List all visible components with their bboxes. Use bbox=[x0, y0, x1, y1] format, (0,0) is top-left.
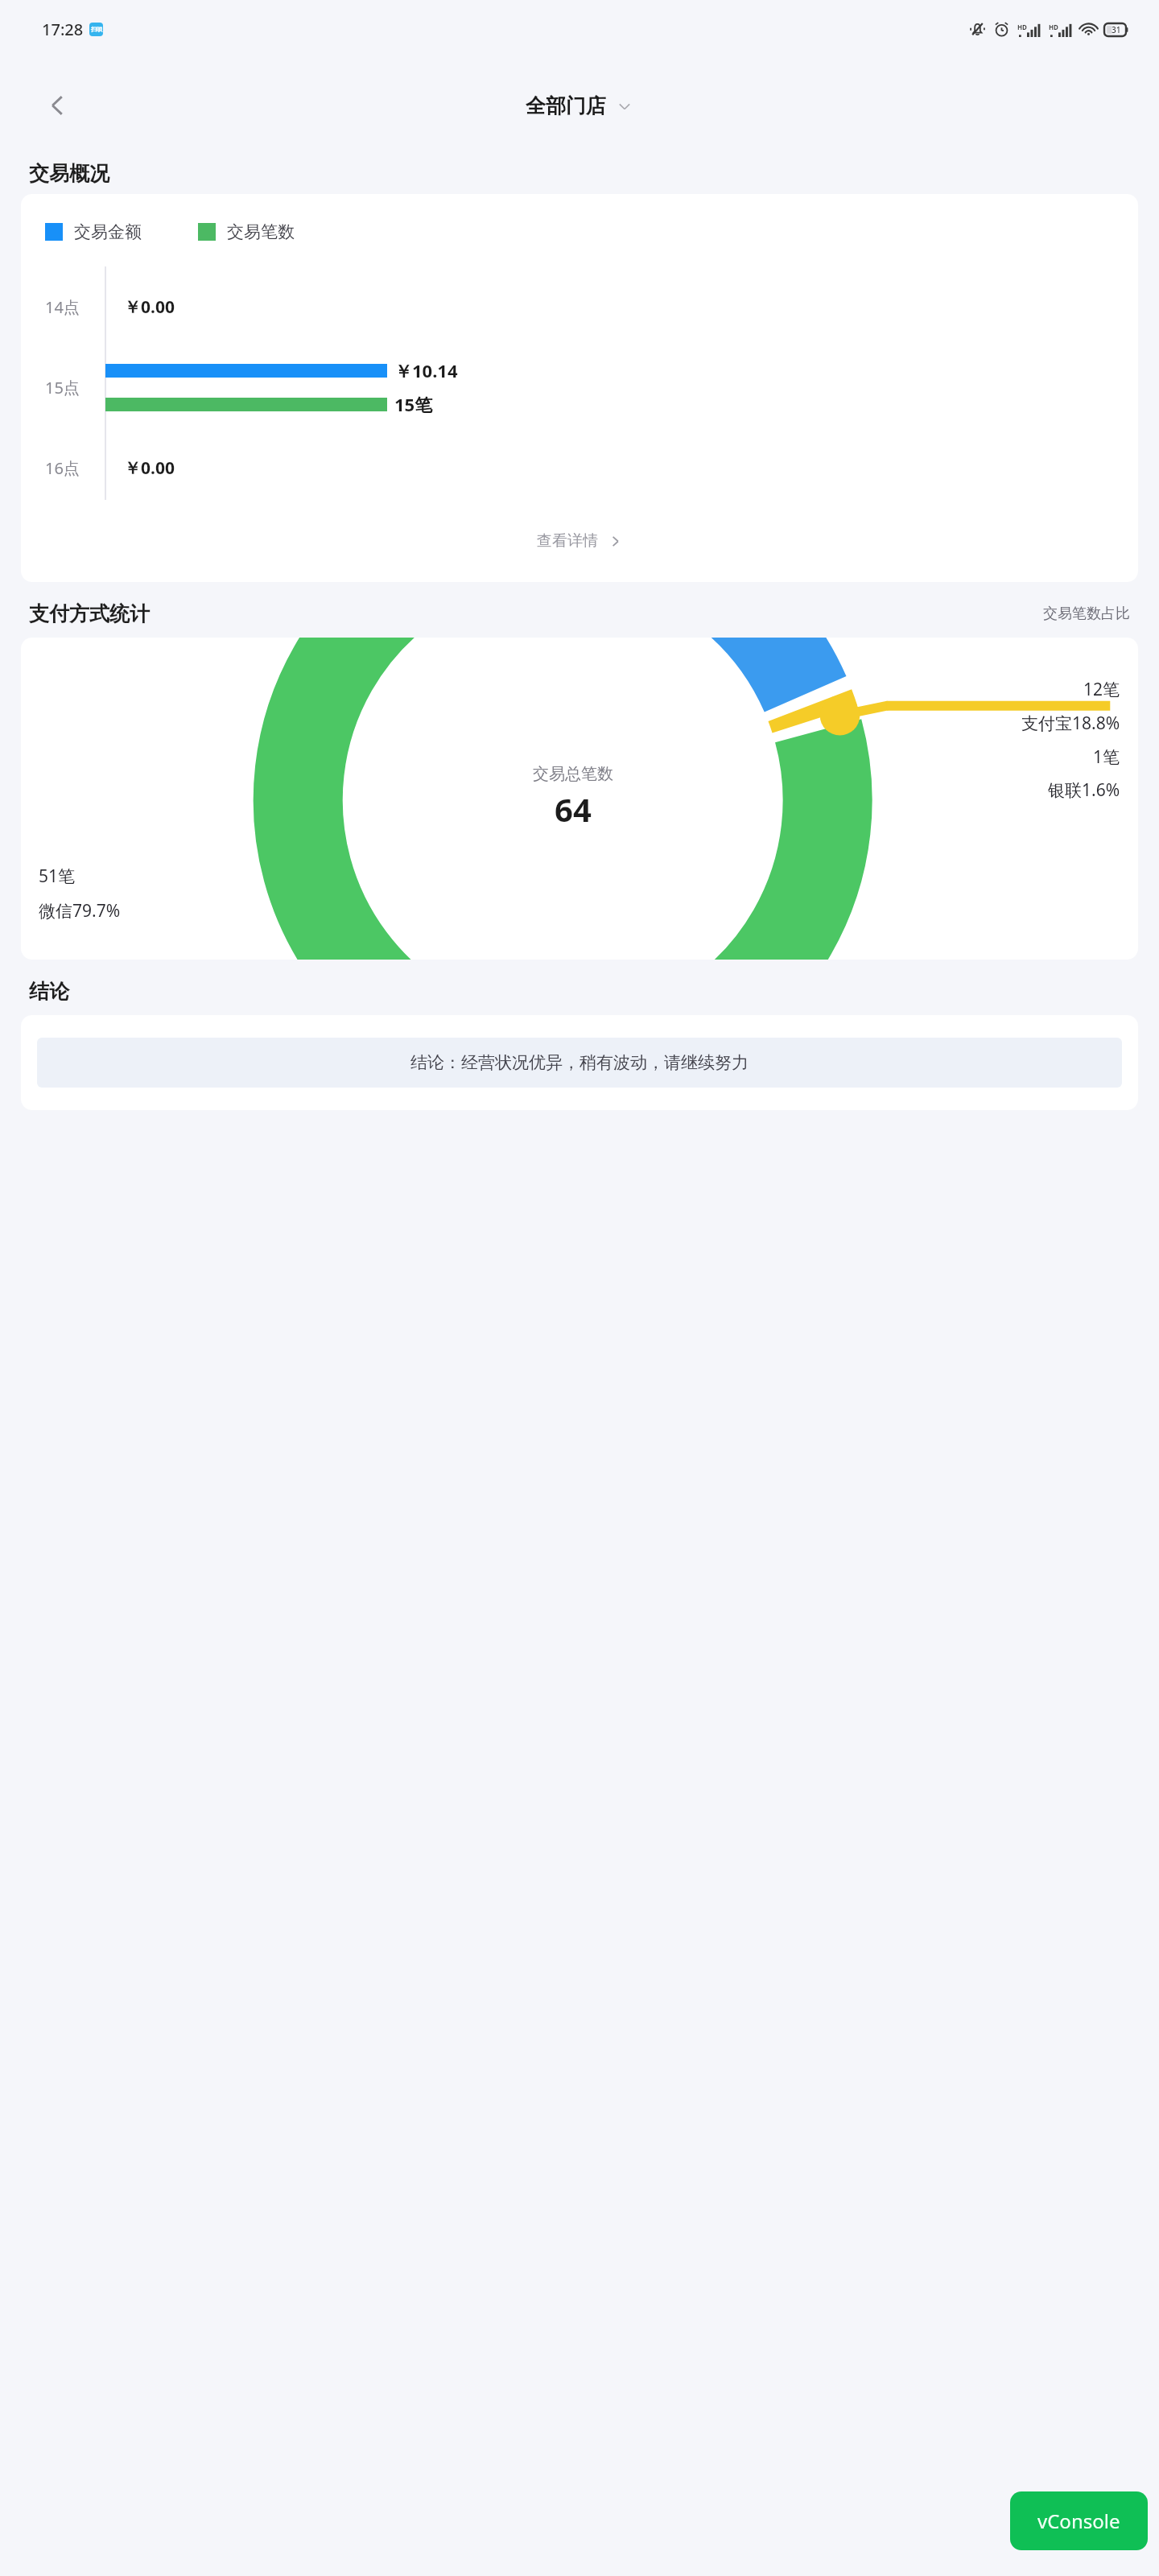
button[interactable]: 全部门店 bbox=[526, 93, 633, 118]
staticText: ￥0.00 bbox=[124, 456, 175, 480]
staticText: 全部门店 bbox=[526, 93, 606, 118]
staticText: HD bbox=[1049, 23, 1058, 31]
staticText: 查看详情 bbox=[537, 531, 598, 551]
button[interactable]: vConsole bbox=[1010, 2491, 1148, 2550]
staticText: ￥10.14 bbox=[394, 358, 458, 382]
staticText: 12笔 bbox=[1083, 678, 1120, 701]
staticText: 17:28 bbox=[42, 19, 84, 40]
staticText: 交易笔数占比 bbox=[1043, 605, 1130, 623]
staticText: 交易金额 bbox=[74, 221, 142, 242]
staticText: 16点 bbox=[45, 457, 80, 479]
staticText: 扫呗 bbox=[91, 26, 102, 33]
staticText: 31 bbox=[1112, 24, 1121, 35]
button[interactable]: Back bbox=[29, 76, 87, 134]
staticText: 1笔 bbox=[1093, 745, 1120, 769]
staticText: HD bbox=[1017, 23, 1027, 31]
staticText: 结论 bbox=[29, 979, 69, 1004]
staticText: 交易总笔数 bbox=[533, 764, 613, 784]
staticText: 微信79.7% bbox=[39, 899, 121, 923]
staticText: 15笔 bbox=[394, 392, 433, 416]
staticText: 银联1.6% bbox=[1048, 778, 1120, 802]
staticText: 交易概况 bbox=[29, 161, 109, 186]
staticText: 51笔 bbox=[39, 865, 76, 888]
staticText: vConsole bbox=[1037, 2508, 1120, 2534]
staticText: 14点 bbox=[45, 296, 80, 318]
staticText: 结论：经营状况优异，稍有波动，请继续努力 bbox=[410, 1052, 749, 1073]
staticText: 64 bbox=[555, 787, 592, 831]
staticText: ￥0.00 bbox=[124, 295, 175, 319]
staticText: 交易笔数 bbox=[227, 221, 295, 242]
staticText: 支付方式统计 bbox=[29, 601, 150, 626]
button[interactable]: 查看详情 bbox=[21, 511, 1138, 571]
staticText: 15点 bbox=[45, 377, 80, 398]
staticText: 支付宝18.8% bbox=[1021, 712, 1120, 735]
